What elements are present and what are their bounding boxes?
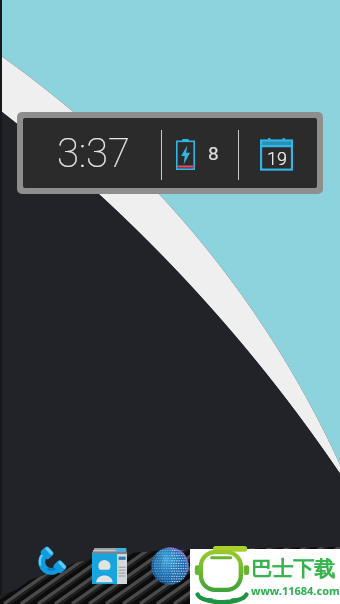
button[interactable]: 3:37	[23, 118, 317, 188]
button[interactable]: Browser	[150, 546, 190, 586]
staticText: 3:37	[57, 130, 130, 177]
button[interactable]: Phone	[28, 544, 68, 584]
staticText: 19	[267, 148, 287, 169]
staticText: 巴士下载	[251, 556, 335, 582]
button[interactable]: Contacts	[92, 548, 127, 584]
staticText: 8	[208, 142, 219, 164]
staticText: www.11684.com	[251, 583, 340, 598]
